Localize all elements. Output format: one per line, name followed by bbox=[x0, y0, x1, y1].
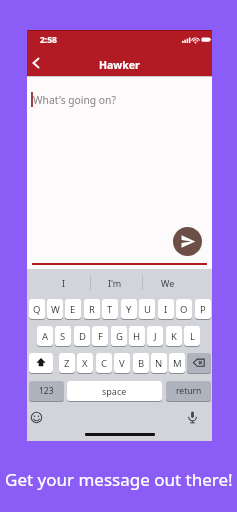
button[interactable] bbox=[29, 56, 43, 70]
staticText: A bbox=[42, 330, 49, 343]
button[interactable]: J bbox=[147, 326, 163, 346]
button[interactable]: W bbox=[47, 299, 63, 319]
staticText: return bbox=[176, 385, 202, 397]
button[interactable]: E bbox=[65, 299, 81, 319]
button[interactable]: B bbox=[133, 353, 149, 373]
button[interactable]: D bbox=[74, 326, 90, 346]
staticText: space bbox=[102, 385, 127, 397]
staticText: We bbox=[161, 277, 175, 289]
staticText: I'm bbox=[108, 277, 122, 289]
button[interactable]: T bbox=[102, 299, 118, 319]
staticText: R bbox=[89, 303, 95, 316]
staticText: U bbox=[144, 303, 151, 316]
button[interactable]: Z bbox=[59, 353, 75, 373]
staticText: X bbox=[82, 357, 88, 370]
button[interactable]: R bbox=[84, 299, 100, 319]
button[interactable]: Q bbox=[29, 299, 45, 319]
staticText: K bbox=[171, 330, 177, 343]
staticText: T bbox=[107, 303, 113, 316]
button[interactable]: Y bbox=[121, 299, 137, 319]
staticText: Hawker bbox=[99, 58, 140, 72]
staticText: I bbox=[164, 303, 168, 316]
staticText: W bbox=[51, 303, 60, 316]
button[interactable]: K bbox=[166, 326, 182, 346]
button[interactable]: U bbox=[139, 299, 155, 319]
button[interactable]: P bbox=[195, 299, 211, 319]
staticText: Q bbox=[33, 303, 41, 316]
button[interactable]: O bbox=[176, 299, 192, 319]
button[interactable]: A bbox=[37, 326, 53, 346]
staticText: P bbox=[200, 303, 206, 316]
staticText: 123 bbox=[39, 385, 54, 397]
staticText: H bbox=[133, 330, 141, 343]
staticText: I bbox=[62, 277, 66, 289]
staticText: F bbox=[98, 330, 103, 343]
button[interactable] bbox=[29, 353, 53, 373]
button[interactable]: space bbox=[67, 381, 162, 401]
staticText: V bbox=[119, 357, 125, 370]
staticText: B bbox=[138, 357, 145, 370]
staticText: Z bbox=[64, 357, 70, 370]
button[interactable]: H bbox=[129, 326, 145, 346]
staticText: 2:58 bbox=[40, 34, 57, 46]
staticText: N bbox=[155, 357, 163, 370]
staticText: O bbox=[180, 303, 188, 316]
button[interactable]: X bbox=[77, 353, 93, 373]
button[interactable] bbox=[173, 227, 202, 256]
staticText: D bbox=[79, 330, 86, 343]
button[interactable]: C bbox=[96, 353, 112, 373]
button[interactable]: F bbox=[92, 326, 108, 346]
staticText: Y bbox=[126, 303, 132, 316]
staticText: C bbox=[101, 357, 108, 370]
staticText: G bbox=[116, 330, 123, 343]
staticText: S bbox=[60, 330, 66, 343]
button[interactable]: I bbox=[158, 299, 174, 319]
button[interactable]: S bbox=[55, 326, 71, 346]
staticText: J bbox=[154, 330, 157, 343]
button[interactable]: L bbox=[184, 326, 200, 346]
staticText: What's going on? bbox=[33, 93, 116, 107]
staticText: L bbox=[190, 330, 195, 343]
button[interactable]: V bbox=[114, 353, 130, 373]
staticText: M bbox=[173, 357, 182, 370]
button[interactable]: return bbox=[166, 381, 211, 401]
button[interactable] bbox=[187, 353, 211, 373]
staticText: Get your message out there! bbox=[5, 468, 233, 491]
button[interactable]: 123 bbox=[29, 381, 64, 401]
button[interactable]: N bbox=[151, 353, 167, 373]
button[interactable]: G bbox=[111, 326, 127, 346]
button[interactable]: M bbox=[169, 353, 185, 373]
staticText: E bbox=[70, 303, 76, 316]
